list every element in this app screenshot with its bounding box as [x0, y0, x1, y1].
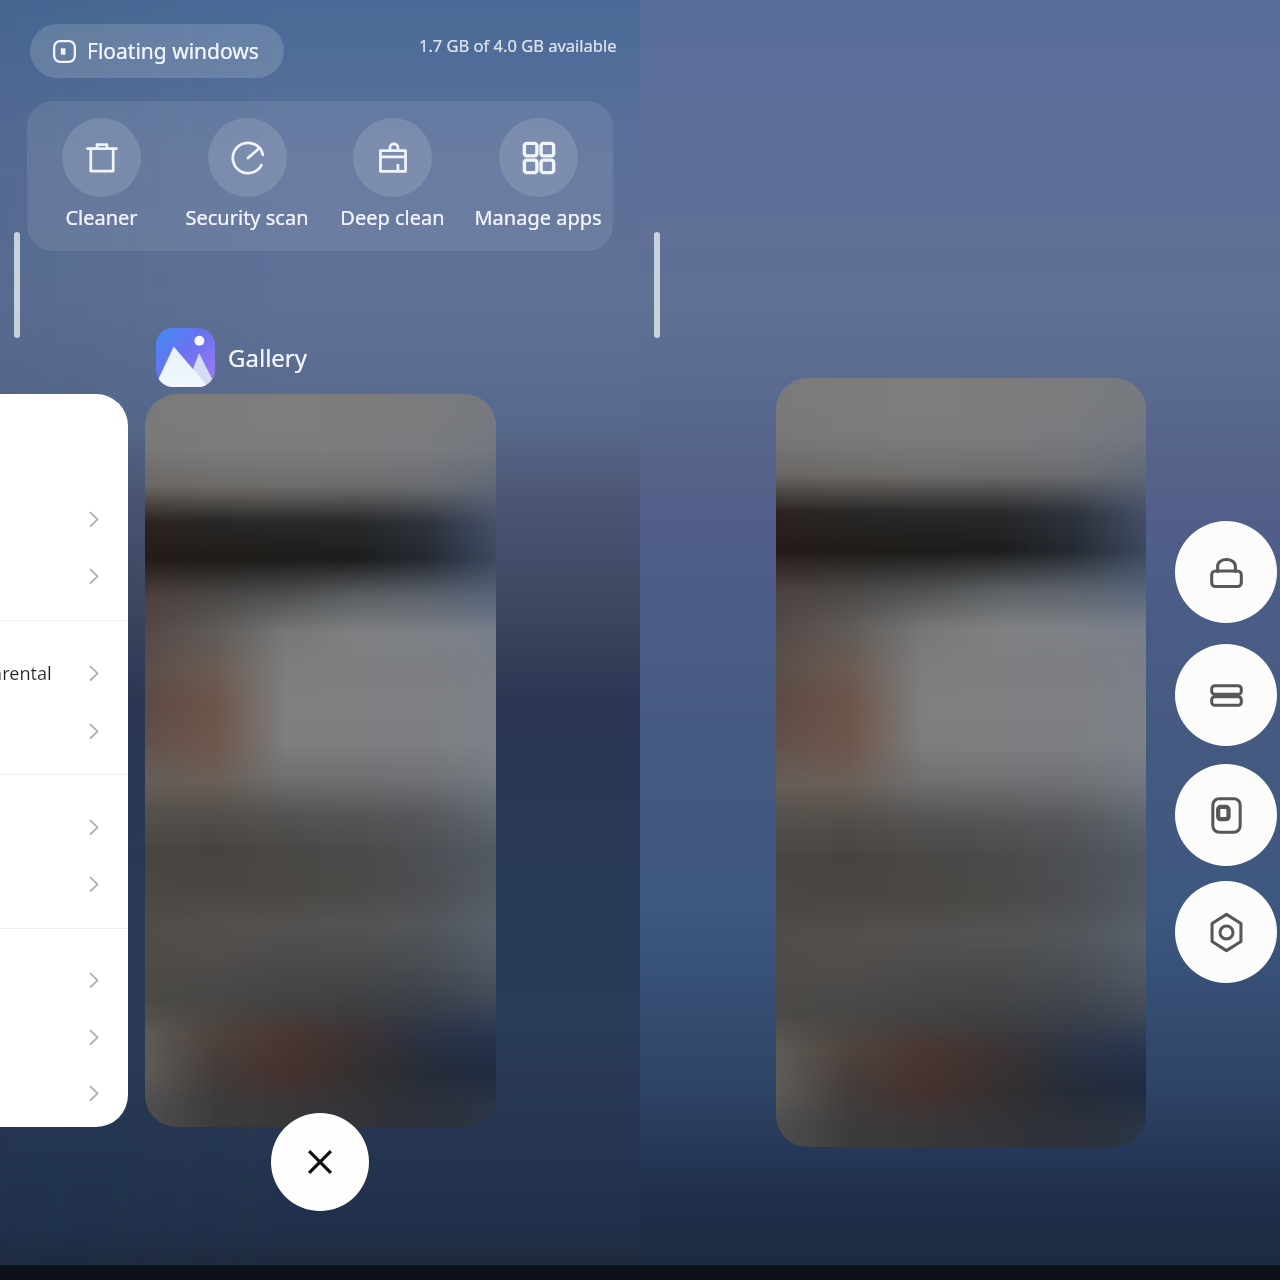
button[interactable]: Close all apps: [271, 1113, 369, 1211]
staticText: parental: [0, 661, 52, 686]
button[interactable]: Pop-up window: [1175, 764, 1277, 866]
button[interactable]: Deep clean: [319, 112, 465, 237]
button[interactable]: App info: [1175, 881, 1277, 983]
button[interactable]: Split screen: [1175, 644, 1277, 746]
button[interactable]: Cleaner: [28, 112, 174, 237]
button[interactable]: Floating windows: [30, 24, 284, 78]
button[interactable]: [145, 394, 496, 1127]
staticText: 1.7 GB of 4.0 GB available: [419, 34, 617, 56]
button[interactable]: Manage apps: [465, 112, 611, 237]
button[interactable]: Security scan: [174, 112, 320, 237]
staticText: Deep clean: [340, 204, 445, 231]
staticText: Manage apps: [474, 204, 602, 231]
button[interactable]: parental: [0, 394, 128, 1127]
button[interactable]: Lock app: [1175, 521, 1277, 623]
staticText: Security scan: [185, 204, 309, 231]
staticText: Floating windows: [87, 37, 259, 66]
staticText: Cleaner: [65, 204, 138, 231]
button[interactable]: Gallery: [156, 328, 308, 387]
staticText: Gallery: [228, 341, 308, 374]
button[interactable]: [776, 378, 1146, 1147]
